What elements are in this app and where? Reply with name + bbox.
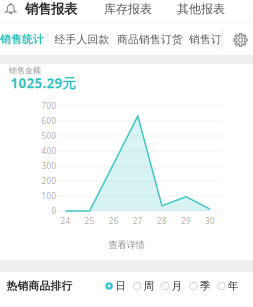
- staticText: 周: [143, 279, 154, 292]
- staticText: 100: [41, 191, 56, 201]
- staticText: 200: [41, 176, 56, 186]
- staticText: 500: [41, 131, 56, 141]
- staticText: 查看详情: [108, 239, 144, 251]
- staticText: 销售报表: [25, 1, 77, 17]
- staticText: 700: [41, 101, 56, 111]
- staticText: 销售订货: [189, 33, 233, 46]
- button[interactable]: 销售报表: [21, 0, 81, 20]
- staticText: 300: [41, 161, 56, 171]
- staticText: 26: [109, 216, 119, 226]
- button[interactable]: 季: [190, 275, 211, 296]
- staticText: 经手人回款: [54, 33, 109, 46]
- staticText: 27: [133, 216, 143, 226]
- staticText: 29: [181, 216, 191, 226]
- staticText: 销售金额: [9, 66, 41, 75]
- staticText: 日: [115, 279, 126, 292]
- button[interactable]: Notifications: [2, 0, 19, 17]
- staticText: 25: [85, 216, 95, 226]
- staticText: 热销商品排行: [6, 279, 72, 292]
- staticText: 28: [157, 216, 167, 226]
- staticText: 30: [205, 216, 215, 226]
- button[interactable]: 月: [161, 275, 182, 296]
- staticText: 库存报表: [104, 2, 152, 16]
- staticText: 600: [41, 116, 56, 126]
- staticText: 销售统计: [0, 33, 44, 46]
- button[interactable]: Settings: [230, 30, 250, 50]
- button[interactable]: 日: [105, 275, 126, 296]
- button[interactable]: 其他报表: [173, 0, 229, 19]
- staticText: 季: [200, 279, 211, 292]
- staticText: 商品销售订货: [117, 33, 183, 46]
- staticText: 年: [228, 279, 239, 292]
- staticText: 400: [41, 146, 56, 156]
- button[interactable]: 经手人回款: [52, 30, 111, 49]
- button[interactable]: 周: [133, 275, 154, 296]
- button[interactable]: 商品销售订货: [115, 30, 185, 49]
- staticText: 其他报表: [177, 2, 225, 16]
- staticText: 月: [171, 279, 182, 292]
- button[interactable]: 销售订货: [187, 30, 235, 49]
- button[interactable]: 查看详情: [88, 233, 164, 257]
- staticText: 24: [60, 216, 70, 226]
- staticText: 1025.29元: [10, 74, 75, 92]
- staticText: 0: [51, 206, 56, 216]
- button[interactable]: 库存报表: [100, 0, 156, 19]
- button[interactable]: 年: [218, 275, 239, 296]
- button[interactable]: 销售统计: [0, 30, 46, 49]
